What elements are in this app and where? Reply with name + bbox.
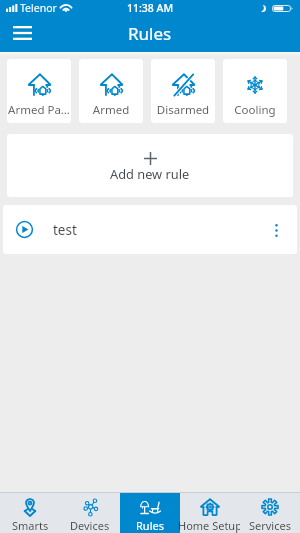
staticText: Devices bbox=[70, 518, 110, 533]
staticText: Rules bbox=[136, 518, 164, 533]
button[interactable]: More options bbox=[265, 219, 287, 241]
button[interactable]: test bbox=[3, 205, 297, 254]
staticText: Armed Pa… bbox=[7, 102, 71, 118]
staticText: test bbox=[53, 221, 77, 239]
button[interactable]: Devices bbox=[60, 493, 120, 533]
staticText: Smarts bbox=[12, 518, 49, 533]
staticText: Services bbox=[249, 518, 291, 533]
button[interactable]: Add new rule bbox=[7, 134, 293, 197]
button[interactable]: Services bbox=[240, 493, 300, 533]
staticText: Home Setup bbox=[178, 518, 242, 533]
staticText: Telenor bbox=[20, 1, 57, 15]
staticText: Rules bbox=[128, 22, 172, 45]
button[interactable]: Cooling bbox=[223, 59, 287, 123]
staticText: 11:38 AM bbox=[127, 1, 174, 15]
staticText: Armed bbox=[79, 102, 143, 118]
button[interactable]: Open navigation menu bbox=[6, 17, 38, 49]
staticText: Disarmed bbox=[151, 102, 215, 118]
button[interactable]: Armed Pa… bbox=[7, 59, 71, 123]
button[interactable]: Disarmed bbox=[151, 59, 215, 123]
button[interactable]: Armed bbox=[79, 59, 143, 123]
button[interactable]: Home Setup bbox=[180, 493, 240, 533]
staticText: Cooling bbox=[223, 102, 287, 118]
button[interactable]: Smarts bbox=[0, 493, 60, 533]
button[interactable]: Rules bbox=[120, 493, 180, 533]
staticText: Add new rule bbox=[110, 165, 190, 182]
